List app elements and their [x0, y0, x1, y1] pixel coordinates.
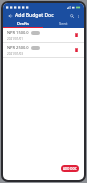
button[interactable]: Drafts — [3, 20, 43, 27]
button[interactable]: More options — [75, 13, 81, 19]
staticText: Sent — [59, 21, 68, 26]
button[interactable]: Back — [6, 12, 13, 19]
button[interactable]: ADD DOC — [61, 165, 79, 172]
staticText: Drafts — [17, 21, 30, 26]
staticText: Add Budget Doc — [15, 12, 68, 19]
staticText: NPR 1500.0 — [7, 30, 29, 35]
button[interactable]: Delete — [72, 46, 80, 54]
button[interactable]: NPR 2500.0 — [3, 43, 84, 57]
button[interactable]: Search — [68, 12, 75, 19]
staticText: NPR 2500.0 — [7, 45, 29, 50]
button[interactable]: NPR 1500.0 — [3, 28, 84, 42]
button[interactable]: Delete — [72, 31, 80, 39]
staticText: 2021/01/01 — [7, 37, 23, 41]
staticText: ADD DOC — [63, 167, 77, 171]
button[interactable]: Sent — [43, 20, 84, 27]
staticText: 2021/01/03 — [7, 52, 23, 56]
